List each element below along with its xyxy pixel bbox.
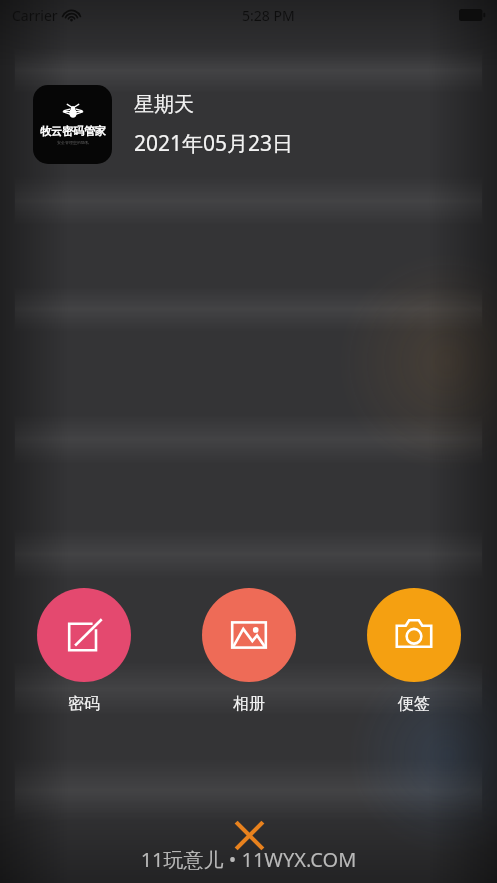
button[interactable]: 密码 — [37, 588, 131, 714]
staticText: 2021年05月23日 — [134, 129, 294, 158]
staticText: 牧云密码管家 — [40, 124, 106, 138]
button[interactable]: 牧云密码管家 app icon — [33, 85, 112, 164]
other: 密码 — [64, 615, 104, 655]
button[interactable]: Close — [226, 812, 272, 858]
other: 相册 — [228, 614, 270, 656]
staticText: 密码 — [68, 694, 100, 714]
staticText: 便签 — [398, 694, 430, 714]
staticText: 5:28 PM — [242, 6, 295, 25]
staticText: 相册 — [233, 694, 265, 714]
staticText: Carrier — [12, 6, 58, 25]
button[interactable]: 便签 — [367, 588, 461, 714]
other: 便签 — [393, 614, 435, 656]
button[interactable]: 相册 — [202, 588, 296, 714]
staticText: 11玩意儿 • 11WYX.COM — [0, 846, 497, 873]
staticText: 星期天 — [134, 92, 194, 117]
staticText: 安全管理您的隐私 — [57, 140, 89, 145]
